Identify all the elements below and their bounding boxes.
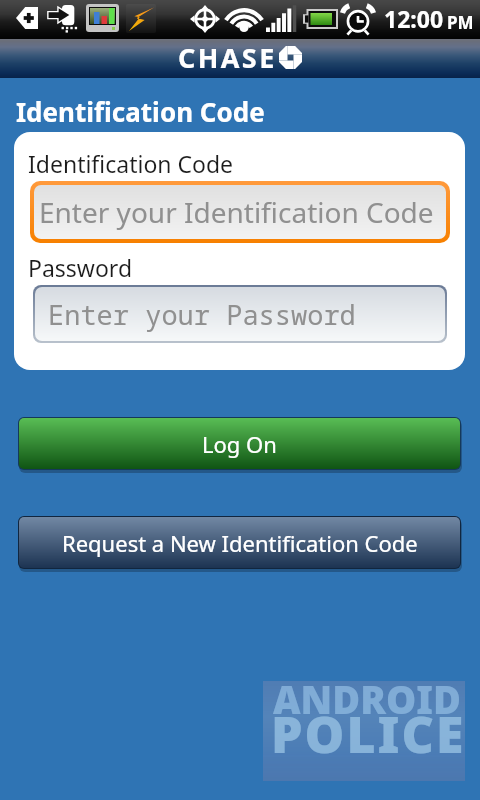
staticText: Identification Code (16, 94, 265, 129)
staticText: CHASE (178, 39, 277, 76)
staticText: POLICE (271, 700, 466, 768)
staticText: Request a New Identification Code (62, 528, 418, 558)
button[interactable]: Enter your Identification Code (34, 185, 446, 239)
staticText: Password (28, 252, 133, 283)
staticText: ANDROID (273, 673, 461, 725)
button[interactable]: Request a New Identification Code (19, 517, 460, 568)
staticText: Identification Code (28, 148, 234, 179)
staticText: Enter your Password (48, 296, 356, 333)
staticText: 12:00 (384, 3, 444, 34)
button[interactable]: Enter your Password (35, 287, 445, 341)
staticText: Log On (202, 429, 277, 459)
staticText: Enter your Identification Code (39, 193, 434, 231)
button[interactable]: Log On (19, 418, 460, 469)
staticText: PM (447, 11, 474, 34)
